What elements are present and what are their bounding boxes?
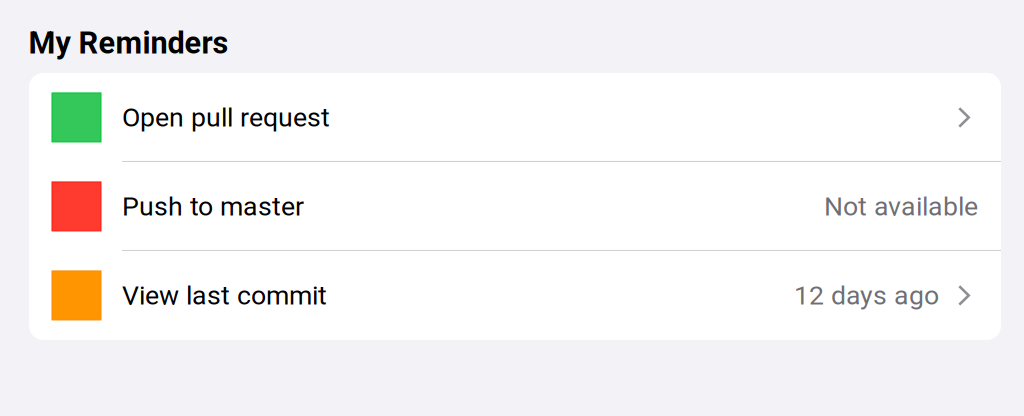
staticText: Not available [824, 191, 978, 222]
staticText: My Reminders [28, 25, 228, 61]
staticText: Open pull request [122, 102, 330, 133]
button[interactable]: View last commit [29, 251, 1001, 340]
button[interactable]: Push to master [29, 162, 1001, 251]
staticText: 12 days ago [794, 280, 939, 311]
button[interactable]: Open pull request [29, 73, 1001, 162]
staticText: Push to master [122, 191, 304, 222]
staticText: View last commit [122, 280, 327, 311]
